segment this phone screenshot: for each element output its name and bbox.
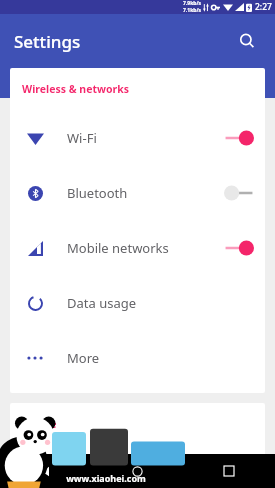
staticText: 7.1kb/s xyxy=(183,7,201,14)
button[interactable]: Toggle on xyxy=(223,128,255,148)
button[interactable]: Toggle off xyxy=(223,183,255,203)
staticText: Wireless & networks xyxy=(22,82,129,96)
button[interactable]: Back xyxy=(0,454,91,488)
button[interactable]: Data usage xyxy=(10,275,265,330)
button[interactable]: Toggle on xyxy=(223,238,255,258)
button[interactable]: Home xyxy=(91,454,183,488)
staticText: Bluetooth xyxy=(67,184,223,202)
staticText: Wi-Fi xyxy=(67,129,223,147)
button[interactable]: Recents xyxy=(183,454,275,488)
button[interactable]: Wi-Fi xyxy=(10,110,265,165)
button[interactable]: Search xyxy=(227,21,267,61)
staticText: Data usage xyxy=(67,294,255,312)
staticText: 2:27 xyxy=(255,1,272,13)
staticText: More xyxy=(67,349,255,367)
staticText: Settings xyxy=(14,30,81,53)
staticText: 7.9kb/s xyxy=(183,0,201,7)
staticText: www.xiaohei.com xyxy=(66,472,146,484)
staticText: Mobile networks xyxy=(67,239,223,257)
button[interactable]: Mobile networks xyxy=(10,220,265,275)
button[interactable]: More xyxy=(10,330,265,385)
button[interactable]: Bluetooth xyxy=(10,165,265,220)
staticText: Device xyxy=(22,417,57,431)
